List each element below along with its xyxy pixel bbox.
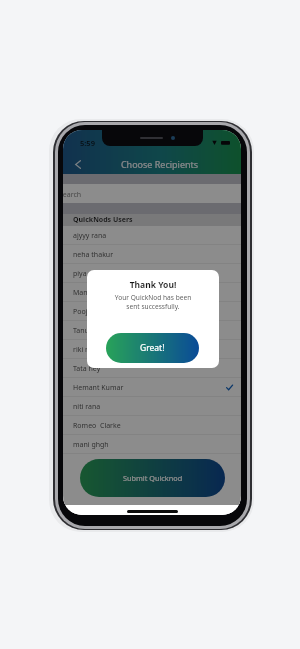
staticText: niti rana — [73, 402, 226, 412]
button[interactable]: Romeo Clarke — [63, 416, 241, 435]
button[interactable]: niti rana — [63, 397, 241, 416]
button[interactable]: Tata hey — [63, 359, 241, 378]
button[interactable]: Search — [63, 184, 241, 203]
button[interactable]: Pooja — [63, 302, 241, 321]
staticText: neha thakur — [73, 250, 226, 260]
button[interactable]: neha thakur — [63, 245, 241, 264]
button[interactable]: mani ghgh — [63, 435, 241, 454]
staticText: Tanu — [73, 326, 226, 336]
staticText: Romeo Clarke — [73, 421, 226, 431]
staticText: Manish — [73, 288, 226, 298]
staticText: Your QuickNod has been sent successfully… — [87, 293, 219, 311]
staticText: Tata hey — [73, 364, 226, 374]
staticText: Thank You! — [87, 279, 219, 291]
staticText: Hemant Kumar — [73, 383, 226, 393]
staticText: QuickNods Users — [73, 215, 133, 225]
staticText: Submit Quicknod — [123, 473, 183, 483]
staticText: Search — [63, 190, 82, 200]
staticText: Choose Recipients — [92, 158, 227, 170]
staticText: Great! — [140, 342, 165, 354]
button[interactable]: Tanu — [63, 321, 241, 340]
button[interactable]: Submit Quicknod — [80, 459, 225, 497]
staticText: mani ghgh — [73, 440, 226, 450]
staticText: piya rana — [73, 269, 226, 279]
button[interactable]: Back — [63, 153, 92, 175]
button[interactable]: ajyyy rana — [63, 226, 241, 245]
button[interactable]: Great! — [106, 333, 199, 363]
staticText: riki rana — [73, 345, 226, 355]
button[interactable]: Hemant Kumar — [63, 378, 241, 397]
button[interactable]: Manish — [63, 283, 241, 302]
staticText: Pooja — [73, 307, 226, 317]
staticText: ajyyy rana — [73, 231, 226, 241]
button[interactable]: piya rana — [63, 264, 241, 283]
staticText: 5:59 — [80, 138, 95, 148]
button[interactable]: riki rana — [63, 340, 241, 359]
